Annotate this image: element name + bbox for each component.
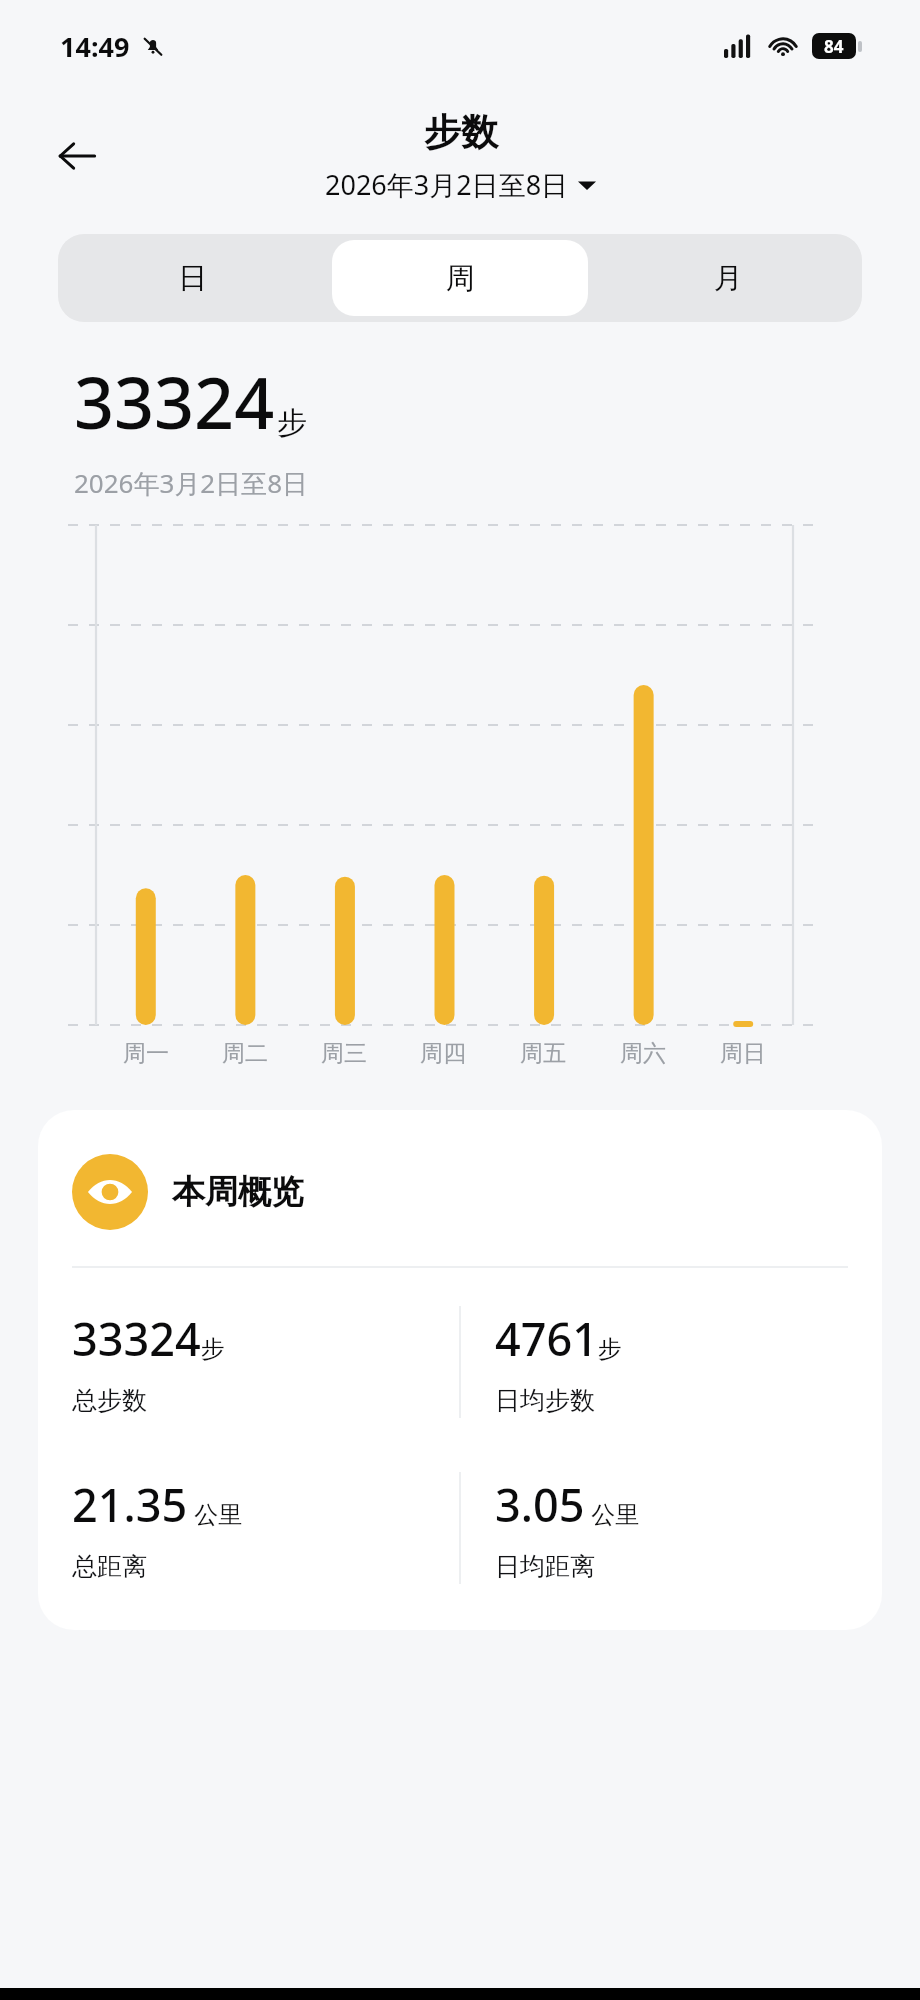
staticText: 步: [277, 404, 307, 442]
staticText: 公里: [585, 1497, 640, 1530]
button[interactable]: 日: [64, 240, 320, 316]
staticText: 周二: [222, 1039, 268, 1068]
staticText: 公里: [188, 1497, 243, 1530]
staticText: 日均步数: [495, 1385, 595, 1416]
staticText: 4761: [495, 1308, 598, 1369]
staticText: 周四: [420, 1039, 466, 1068]
staticText: 日均距离: [495, 1551, 595, 1582]
staticText: 月: [714, 260, 743, 297]
button[interactable]: 周: [332, 240, 588, 316]
staticText: 84: [824, 35, 844, 58]
staticText: 周日: [720, 1039, 766, 1068]
staticText: 周一: [123, 1039, 169, 1068]
button[interactable]: 月: [600, 240, 856, 316]
staticText: 总距离: [72, 1551, 147, 1582]
staticText: 2026年3月2日至8日: [325, 166, 569, 203]
staticText: 2026年3月2日至8日: [74, 465, 309, 501]
staticText: 周三: [321, 1039, 367, 1068]
staticText: 周: [446, 260, 475, 297]
staticText: 日: [178, 260, 207, 297]
staticText: 步: [201, 1334, 225, 1364]
staticText: 步数: [424, 109, 498, 156]
staticText: 3.05: [495, 1474, 585, 1535]
staticText: 本周概览: [172, 1171, 304, 1213]
staticText: 33324: [74, 354, 275, 449]
staticText: 33324: [72, 1308, 201, 1369]
button[interactable]: 本周概览: [38, 1110, 882, 1630]
button[interactable]: Back: [46, 125, 108, 187]
staticText: 步: [598, 1334, 622, 1364]
button[interactable]: 2026年3月2日至8日: [325, 166, 596, 203]
staticText: 周五: [520, 1039, 566, 1068]
staticText: 21.35: [72, 1474, 188, 1535]
staticText: 周六: [620, 1039, 666, 1068]
staticText: 14:49: [60, 28, 130, 65]
staticText: 总步数: [72, 1385, 147, 1416]
